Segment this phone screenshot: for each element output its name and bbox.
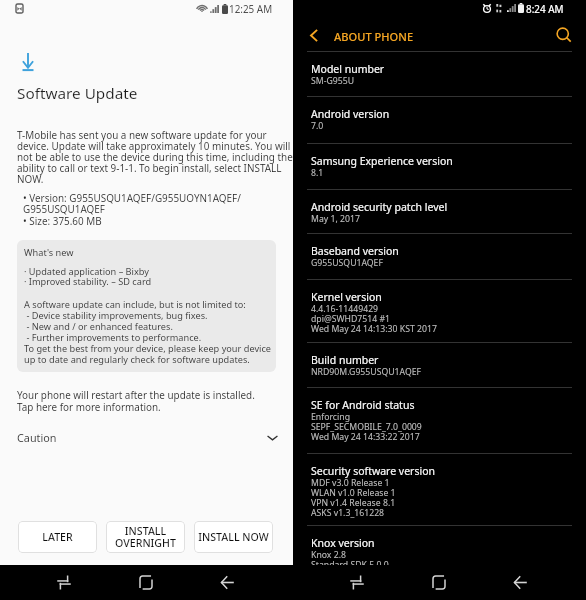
button[interactable]: INSTALL OVERNIGHT [106,521,185,553]
staticText: 8:24 AM [526,2,564,15]
staticText: Kernel version [311,290,382,304]
staticText: Android version [311,107,390,121]
staticText: • Version: G955USQU1AQEF/G955UOYN1AQEF/ … [23,191,293,228]
staticText: Model number [311,62,385,76]
button[interactable]: Knox version [293,525,586,585]
button[interactable]: Caution [0,424,293,450]
staticText: Android security patch level [311,200,448,214]
button[interactable]: Recent apps [42,565,86,600]
button[interactable]: SE for Android status [293,387,586,453]
button[interactable]: INSTALL NOW [194,521,273,553]
staticText: INSTALL OVERNIGHT [115,524,176,551]
staticText: LATER [42,530,73,544]
staticText: · Updated application – Bixby · Improved… [24,265,152,288]
button[interactable]: Samsung Experience version [293,143,586,189]
staticText: Build number [311,353,379,367]
staticText: Your phone will restart after the update… [17,388,255,414]
staticText: G955USQU1AQEF [311,257,383,269]
staticText: SE for Android status [311,398,415,412]
staticText: 7.0 [311,120,324,132]
staticText: Caution [17,430,57,445]
staticText: May 1, 2017 [311,213,360,225]
button[interactable]: Android security patch level [293,189,586,233]
staticText: SM-G955U [311,75,355,87]
button[interactable]: Back [205,565,249,600]
button[interactable]: Recent apps [335,565,379,600]
staticText: 4.4.16-11449429 dpi@SWHD7514 #1 Wed May … [311,303,437,334]
staticText: Knox version [311,536,375,550]
staticText: 12:25 AM [229,2,273,15]
staticText: ABOUT PHONE [334,29,414,44]
button[interactable]: What's new [17,240,276,372]
button[interactable]: Baseband version [293,233,586,279]
staticText: Baseband version [311,244,399,258]
button[interactable]: Home [417,565,461,600]
staticText: A software update can include, but is no… [24,298,272,365]
staticText: Knox 2.8 Standard SDK 5.0.0 [311,549,389,570]
button[interactable]: Android version [293,96,586,143]
staticText: NRD90M.G955USQU1AQEF [311,366,422,378]
button[interactable]: LATER [18,521,97,553]
button[interactable]: Kernel version [293,279,586,342]
staticText: T-Mobile has sent you a new software upd… [17,128,309,186]
button[interactable]: Build number [293,342,586,387]
staticText: INSTALL NOW [198,530,269,544]
staticText: 8.1 [311,167,324,179]
button[interactable]: Home [124,565,168,600]
staticText: Enforcing SEPF_SECMOBILE_7.0_0009 Wed Ma… [311,411,422,442]
button[interactable]: Model number [293,51,586,96]
button[interactable]: Search [546,19,582,50]
staticText: What's new [24,246,74,259]
staticText: MDF v3.0 Release 1 WLAN v1.0 Release 1 V… [311,477,396,518]
staticText: Software Update [17,83,138,104]
staticText: Samsung Experience version [311,154,453,168]
button[interactable]: Security software version [293,453,586,525]
button[interactable]: Navigate up [299,20,329,51]
staticText: Security software version [311,464,436,478]
button[interactable]: Back [498,565,542,600]
